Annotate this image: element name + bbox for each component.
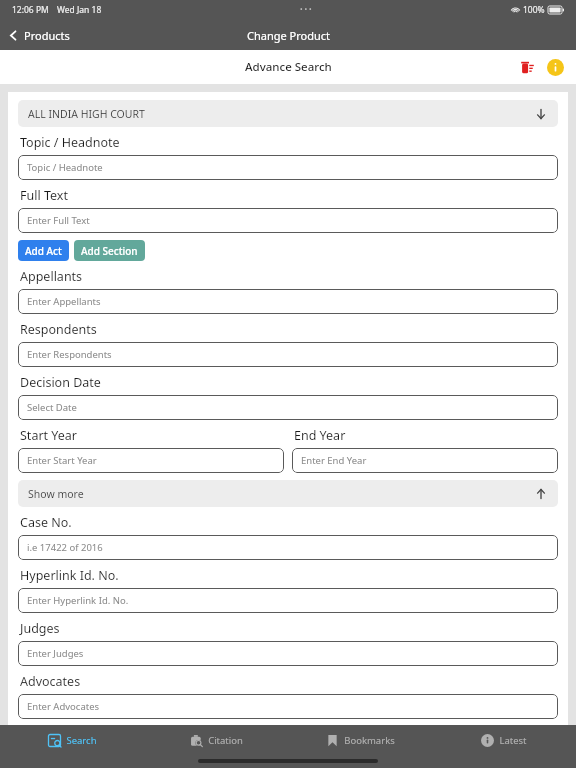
staticText: Select Date bbox=[27, 401, 77, 414]
button[interactable]: Add Act bbox=[18, 240, 69, 261]
staticText: Respondents bbox=[20, 321, 97, 338]
staticText: Citation bbox=[208, 734, 243, 747]
staticText: Wed Jan 18 bbox=[57, 4, 102, 16]
staticText: Search bbox=[66, 734, 97, 747]
button[interactable]: Enter Hyperlink Id. No. bbox=[18, 588, 558, 613]
staticText: Appellants bbox=[20, 268, 83, 285]
staticText: Topic / Headnote bbox=[20, 134, 120, 151]
staticText: Add Act bbox=[25, 244, 62, 258]
staticText: Enter Respondents bbox=[27, 348, 112, 361]
staticText: Enter Hyperlink Id. No. bbox=[27, 594, 129, 607]
button[interactable]: Citation bbox=[144, 729, 288, 768]
button[interactable]: Enter Advocates bbox=[18, 694, 558, 719]
button[interactable]: ALL INDIA HIGH COURT bbox=[18, 100, 558, 127]
button[interactable]: Topic / Headnote bbox=[18, 155, 558, 180]
button[interactable]: Enter Full Text bbox=[18, 208, 558, 233]
staticText: Topic / Headnote bbox=[27, 161, 103, 174]
staticText: Bookmarks bbox=[344, 734, 395, 747]
button[interactable]: Enter Judges bbox=[18, 641, 558, 666]
button[interactable]: Information bbox=[544, 56, 566, 78]
button[interactable]: Clear bbox=[516, 56, 538, 78]
staticText: i.e 17422 of 2016 bbox=[27, 541, 103, 554]
button[interactable]: Select Date bbox=[18, 395, 558, 420]
staticText: End Year bbox=[294, 427, 346, 444]
staticText: Advocates bbox=[20, 673, 81, 690]
staticText: Judges bbox=[20, 620, 60, 637]
staticText: Add Section bbox=[81, 244, 138, 258]
staticText: Hyperlink Id. No. bbox=[20, 567, 119, 584]
button[interactable]: i.e 17422 of 2016 bbox=[18, 535, 558, 560]
button[interactable]: Show more bbox=[18, 480, 558, 507]
staticText: Decision Date bbox=[20, 374, 101, 391]
staticText: Show more bbox=[28, 487, 84, 501]
button[interactable]: Enter Respondents bbox=[18, 342, 558, 367]
staticText: Products bbox=[24, 28, 70, 43]
staticText: Enter Advocates bbox=[27, 700, 100, 713]
button[interactable]: Latest bbox=[432, 729, 576, 768]
button[interactable]: Search bbox=[0, 729, 144, 768]
staticText: Advance Search bbox=[245, 59, 332, 75]
staticText: Full Text bbox=[20, 187, 68, 204]
staticText: Enter Judges bbox=[27, 647, 84, 660]
button[interactable]: Products bbox=[0, 24, 80, 47]
button[interactable]: Enter Start Year bbox=[18, 448, 284, 473]
staticText: Change Product bbox=[247, 28, 330, 43]
staticText: Case No. bbox=[20, 514, 72, 531]
button[interactable]: Enter Appellants bbox=[18, 289, 558, 314]
staticText: Enter Full Text bbox=[27, 214, 90, 227]
button[interactable]: Enter End Year bbox=[292, 448, 558, 473]
staticText: Enter End Year bbox=[301, 454, 367, 467]
staticText: 100% bbox=[523, 4, 545, 16]
staticText: • • • bbox=[300, 5, 312, 15]
staticText: Enter Start Year bbox=[27, 454, 97, 467]
staticText: 12:06 PM bbox=[12, 4, 49, 16]
button[interactable]: Add Section bbox=[74, 240, 145, 261]
staticText: Start Year bbox=[20, 427, 77, 444]
staticText: ALL INDIA HIGH COURT bbox=[28, 107, 145, 121]
staticText: Latest bbox=[499, 734, 527, 747]
button[interactable]: Bookmarks bbox=[288, 729, 432, 768]
staticText: Enter Appellants bbox=[27, 295, 101, 308]
